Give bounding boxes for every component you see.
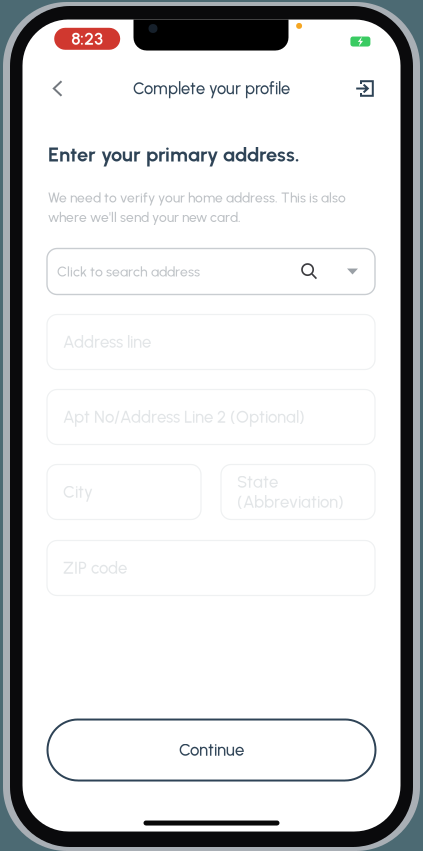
staticText: City	[63, 482, 93, 502]
staticText: ZIP code	[63, 558, 127, 578]
button[interactable]: Address line	[47, 314, 375, 369]
button[interactable]: Apt No/Address Line 2 (Optional)	[47, 389, 375, 444]
staticText: where we'll send your new card.	[48, 209, 241, 225]
staticText: Continue	[179, 740, 244, 760]
button[interactable]: Click to search address	[47, 248, 375, 294]
button[interactable]: Sign out	[342, 66, 388, 110]
button[interactable]: State (Abbreviation)	[221, 464, 375, 519]
button[interactable]: Back	[34, 66, 80, 110]
button[interactable]: Continue	[47, 719, 375, 780]
button[interactable]: ZIP code	[47, 540, 375, 595]
staticText: Complete your profile	[133, 79, 290, 98]
button[interactable]: City	[47, 464, 201, 519]
staticText: Enter your primary address.	[48, 142, 300, 166]
staticText: Apt No/Address Line 2 (Optional)	[63, 407, 305, 427]
staticText: 8:23	[71, 28, 103, 49]
staticText: Address line	[63, 332, 151, 352]
staticText: Click to search address	[57, 263, 200, 280]
staticText: State (Abbreviation)	[237, 472, 344, 512]
staticText: We need to verify your home address. Thi…	[48, 189, 346, 206]
